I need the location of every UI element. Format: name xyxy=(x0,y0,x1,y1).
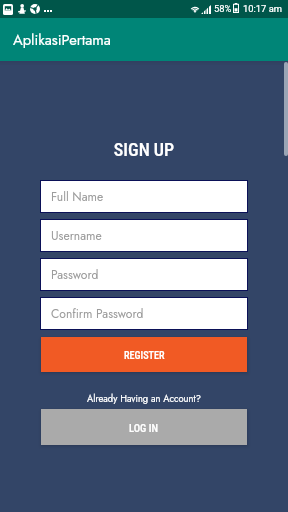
button[interactable]: Password xyxy=(40,258,248,291)
button[interactable]: Username xyxy=(40,219,248,252)
staticText: 10:17 am xyxy=(243,3,283,14)
button[interactable]: Full Name xyxy=(40,180,248,213)
staticText: 58% xyxy=(214,3,232,14)
staticText: REGISTER xyxy=(124,350,165,362)
button[interactable]: LOG IN xyxy=(41,409,247,445)
staticText: Username xyxy=(51,227,102,244)
staticText: Already Having an Account? xyxy=(0,392,288,406)
staticText: Confirm Password xyxy=(51,305,144,322)
staticText: LOG IN xyxy=(129,422,159,434)
staticText: Full Name xyxy=(51,188,104,205)
button[interactable]: Confirm Password xyxy=(40,297,248,330)
button[interactable]: AplikasiPertama xyxy=(0,18,288,61)
staticText: Password xyxy=(51,266,99,283)
staticText: SIGN UP xyxy=(0,139,288,160)
button[interactable]: REGISTER xyxy=(41,337,247,372)
staticText: AplikasiPertama xyxy=(13,29,111,50)
